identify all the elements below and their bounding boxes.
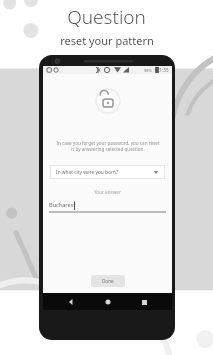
staticText: 98% <box>144 68 152 73</box>
staticText: 21:35 <box>157 67 169 73</box>
button[interactable]: Done <box>91 275 125 287</box>
staticText: In what city were you born? <box>56 169 118 176</box>
button[interactable]: Home <box>100 294 116 310</box>
staticText: Your answer <box>94 189 121 195</box>
staticText: reset your pattern <box>60 33 154 48</box>
button[interactable]: Recent apps <box>136 294 152 310</box>
staticText: Question <box>67 4 146 30</box>
staticText: Done <box>102 278 114 284</box>
button[interactable]: Bucharest <box>49 201 166 212</box>
button[interactable]: In what city were you born? <box>50 165 165 179</box>
staticText: Bucharest <box>49 201 76 209</box>
button[interactable]: Back <box>63 294 79 310</box>
staticText: In case you forget your password, you ca… <box>56 140 160 153</box>
